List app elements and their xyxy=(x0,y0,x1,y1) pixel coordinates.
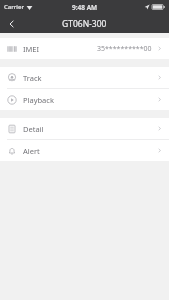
staticText: GT06N-300 xyxy=(62,18,107,30)
staticText: Playback xyxy=(23,95,54,105)
button[interactable]: Alert xyxy=(0,140,169,161)
staticText: Track xyxy=(23,73,42,83)
button[interactable]: IMEI xyxy=(0,38,169,59)
staticText: Alert xyxy=(23,146,40,156)
staticText: Detail xyxy=(23,124,44,134)
button[interactable]: Back xyxy=(0,14,24,33)
button[interactable]: Track xyxy=(0,67,169,88)
staticText: Carrier xyxy=(4,3,24,11)
button[interactable]: Playback xyxy=(0,89,169,110)
staticText: IMEI xyxy=(23,44,40,54)
staticText: 9:48 AM xyxy=(72,3,98,12)
staticText: 35**********00 xyxy=(97,44,152,54)
button[interactable]: Detail xyxy=(0,118,169,139)
